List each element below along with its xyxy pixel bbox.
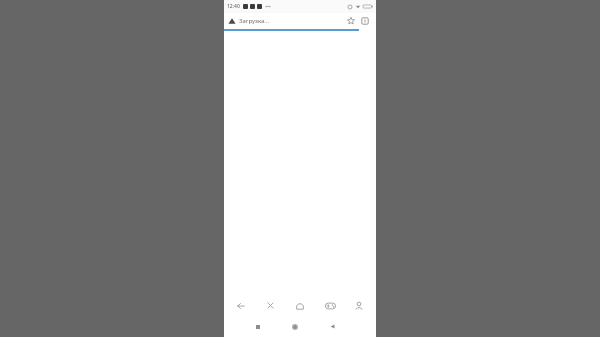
- staticText: 12:40: [227, 3, 240, 10]
- button[interactable]: Home: [287, 295, 313, 316]
- button[interactable]: Bookmark: [344, 14, 358, 28]
- button[interactable]: Home: [284, 316, 306, 337]
- button[interactable]: Games: [317, 295, 343, 316]
- button[interactable]: Tabs: [358, 14, 372, 28]
- other: Security warning: [228, 17, 236, 25]
- button[interactable]: Back: [321, 316, 343, 337]
- staticText: Загрузка...: [239, 17, 270, 25]
- button[interactable]: Security warning: [228, 13, 344, 29]
- button[interactable]: Profile: [346, 295, 372, 316]
- button[interactable]: Back: [228, 295, 254, 316]
- button[interactable]: Stop loading: [257, 295, 283, 316]
- button[interactable]: Recent apps: [247, 316, 269, 337]
